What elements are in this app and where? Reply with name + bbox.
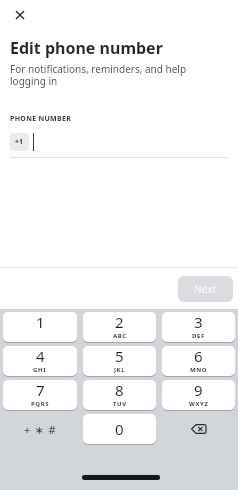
staticText: + ∗ # [24,422,57,437]
staticText: JKL [114,366,126,374]
staticText: 1 [36,312,45,332]
staticText: Edit phone number [10,37,163,59]
staticText: 5 [115,346,124,366]
button[interactable] [162,414,235,444]
staticText: PHONE NUMBER [10,114,72,124]
staticText: ABC [113,332,127,340]
staticText: 7 [36,380,45,400]
button[interactable] [10,5,30,25]
staticText: 0 [115,419,124,439]
staticText: GHI [33,366,47,374]
button[interactable]: 5 [83,346,156,376]
button[interactable]: 7 [3,380,77,410]
button[interactable]: 4 [3,346,77,376]
staticText: 3 [194,312,203,332]
button[interactable]: 0 [83,414,156,444]
button[interactable]: 3 [162,312,235,342]
staticText: For notifications, reminders, and help l… [10,62,187,88]
staticText: 6 [194,346,203,366]
staticText: MNO [190,366,208,374]
staticText: 9 [194,380,203,400]
button[interactable]: 6 [162,346,235,376]
staticText: 8 [115,380,124,400]
button[interactable]: 2 [83,312,156,342]
button[interactable]: 1 [3,312,77,342]
button[interactable]: 8 [83,380,156,410]
button[interactable]: Next [178,276,233,302]
staticText: +1 [15,137,24,147]
button[interactable]: +1 [10,133,29,151]
staticText: WXYZ [189,400,209,408]
staticText: PQRS [31,400,50,408]
button[interactable]: 9 [162,380,235,410]
staticText: 2 [115,312,124,332]
staticText: DEF [192,332,205,340]
staticText: Next [194,282,217,296]
staticText: 4 [36,346,45,366]
staticText: TUV [113,400,127,408]
button[interactable]: + ∗ # [3,414,77,444]
